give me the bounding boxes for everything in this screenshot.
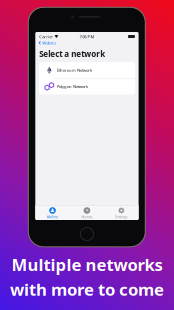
button[interactable]: Wallets xyxy=(39,40,79,46)
button[interactable]: Wallets xyxy=(35,205,70,220)
button[interactable]: Polygon Network xyxy=(39,78,135,94)
staticText: Ethereum Network xyxy=(57,67,92,73)
button[interactable]: Ethereum Network xyxy=(39,62,135,78)
button[interactable]: History xyxy=(70,205,104,220)
button[interactable]: Settings xyxy=(104,205,139,220)
staticText: Select a network xyxy=(39,49,105,59)
staticText: Wallets xyxy=(42,40,56,46)
staticText: with more to come xyxy=(10,278,164,301)
staticText: Carrier xyxy=(39,34,53,39)
staticText: Wallets xyxy=(46,215,58,219)
staticText: Multiple networks xyxy=(11,253,162,276)
staticText: Settings xyxy=(115,215,128,219)
staticText: History xyxy=(81,215,92,219)
staticText: 7:06 PM xyxy=(79,34,94,39)
staticText: Polygon Network xyxy=(57,84,88,89)
